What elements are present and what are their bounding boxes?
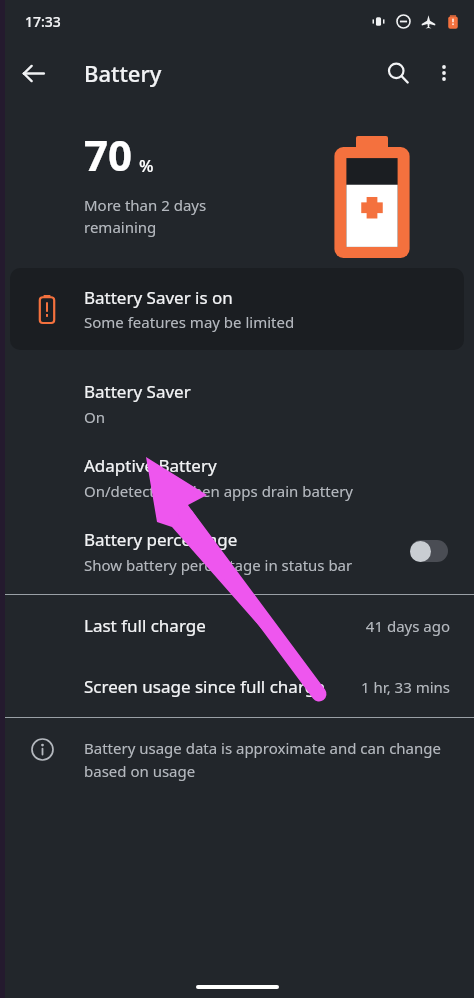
button[interactable]: Screen usage since full charge bbox=[0, 656, 474, 717]
button[interactable]: More options bbox=[422, 51, 466, 95]
staticText: On bbox=[84, 407, 105, 427]
button[interactable]: Adaptive Battery bbox=[0, 440, 474, 514]
button[interactable]: Battery Saver is on bbox=[10, 268, 464, 350]
staticText: Battery Saver bbox=[84, 380, 191, 403]
staticText: % bbox=[139, 154, 154, 177]
button[interactable]: Battery Saver bbox=[0, 366, 474, 440]
button[interactable]: Back bbox=[11, 51, 55, 95]
staticText: 17:33 bbox=[25, 12, 61, 31]
button[interactable]: Last full charge bbox=[0, 595, 474, 656]
staticText: On/detecting when apps drain battery bbox=[84, 481, 353, 501]
staticText: Some features may be limited bbox=[84, 312, 295, 332]
staticText: Battery Saver is on bbox=[84, 286, 233, 309]
staticText: Last full charge bbox=[84, 614, 365, 637]
button[interactable]: Search bbox=[376, 51, 420, 95]
staticText: Battery usage data is approximate and ca… bbox=[84, 738, 441, 781]
staticText: Battery bbox=[84, 58, 162, 88]
staticText: More than 2 days remaining bbox=[84, 195, 207, 238]
staticText: 41 days ago bbox=[365, 616, 450, 636]
button[interactable]: Battery percentage bbox=[0, 514, 474, 588]
staticText: Show battery percentage in status bar bbox=[84, 555, 353, 575]
staticText: Adaptive Battery bbox=[84, 454, 217, 477]
staticText: Screen usage since full charge bbox=[84, 675, 361, 698]
staticText: Battery percentage bbox=[84, 528, 238, 551]
staticText: 70 bbox=[84, 126, 133, 183]
staticText: 1 hr, 33 mins bbox=[361, 677, 450, 697]
